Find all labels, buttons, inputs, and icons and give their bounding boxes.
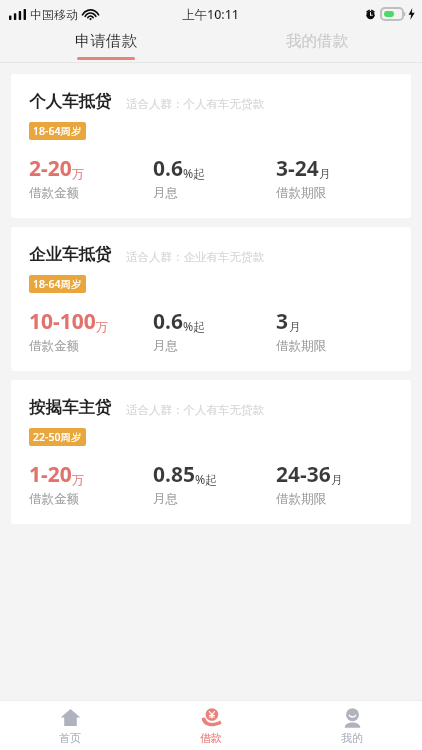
staticText: 0.85 bbox=[153, 460, 195, 489]
staticText: %起 bbox=[183, 165, 206, 181]
staticText: 0.6 bbox=[153, 307, 183, 336]
button[interactable]: 首页 bbox=[0, 701, 140, 750]
staticText: 万 bbox=[72, 166, 84, 181]
staticText: 个人车抵贷 bbox=[29, 91, 112, 112]
staticText: 22-50周岁 bbox=[33, 430, 82, 444]
staticText: 万 bbox=[96, 319, 108, 334]
staticText: 适合人群：个人有车无贷款 bbox=[126, 97, 264, 111]
staticText: 中国移动 bbox=[30, 7, 78, 22]
staticText: 万 bbox=[72, 472, 84, 487]
staticText: 借款金额 bbox=[29, 185, 79, 201]
staticText: %起 bbox=[183, 318, 206, 334]
staticText: 借款期限 bbox=[276, 491, 326, 507]
button[interactable]: 个人车抵贷 bbox=[11, 74, 411, 218]
staticText: 借款金额 bbox=[29, 338, 79, 354]
staticText: 18-64周岁 bbox=[33, 277, 82, 291]
staticText: 0.6 bbox=[153, 154, 183, 183]
staticText: 借款期限 bbox=[276, 185, 326, 201]
staticText: 月 bbox=[319, 166, 331, 181]
button[interactable]: 申请借款 bbox=[0, 28, 211, 63]
staticText: 我的借款 bbox=[286, 31, 348, 51]
button[interactable]: 企业车抵贷 bbox=[11, 227, 411, 371]
staticText: 月 bbox=[289, 319, 301, 334]
staticText: 24-36 bbox=[276, 460, 331, 489]
staticText: 借款 bbox=[200, 731, 222, 745]
staticText: 借款金额 bbox=[29, 491, 79, 507]
staticText: 按揭车主贷 bbox=[29, 397, 112, 418]
staticText: 我的 bbox=[341, 731, 363, 745]
staticText: 适合人群：个人有车无贷款 bbox=[126, 403, 264, 417]
button[interactable]: 我的 bbox=[281, 701, 422, 750]
button[interactable]: 我的借款 bbox=[211, 28, 422, 63]
staticText: 月息 bbox=[153, 338, 178, 354]
staticText: 借款期限 bbox=[276, 338, 326, 354]
staticText: 企业车抵贷 bbox=[29, 244, 112, 265]
staticText: 适合人群：企业有车无贷款 bbox=[126, 250, 264, 264]
staticText: 申请借款 bbox=[75, 31, 137, 51]
button[interactable]: 借款 bbox=[140, 701, 281, 750]
staticText: 1-20 bbox=[29, 460, 72, 489]
staticText: 首页 bbox=[59, 731, 81, 745]
staticText: 3 bbox=[276, 307, 289, 336]
staticText: 18-64周岁 bbox=[33, 124, 82, 138]
staticText: 10-100 bbox=[29, 307, 96, 336]
staticText: 2-20 bbox=[29, 154, 72, 183]
staticText: 月息 bbox=[153, 491, 178, 507]
staticText: 3-24 bbox=[276, 154, 319, 183]
staticText: 月 bbox=[331, 472, 343, 487]
button[interactable]: 按揭车主贷 bbox=[11, 380, 411, 524]
staticText: 上午10:11 bbox=[182, 6, 240, 23]
staticText: %起 bbox=[195, 471, 218, 487]
staticText: 月息 bbox=[153, 185, 178, 201]
